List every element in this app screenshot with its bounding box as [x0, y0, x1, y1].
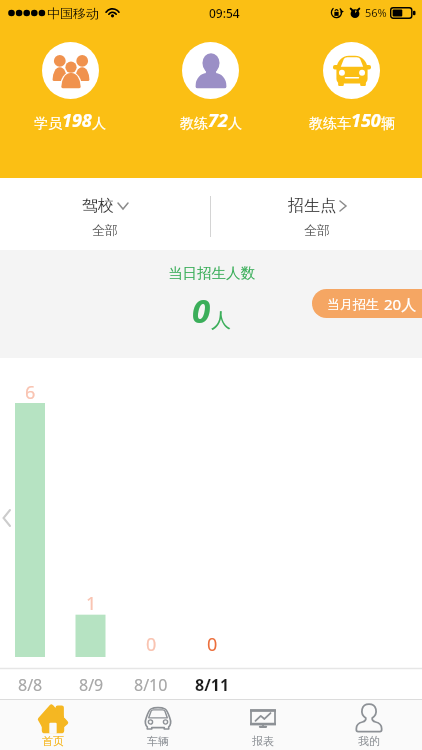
button[interactable]: Home	[0, 700, 105, 750]
staticText: 0	[146, 632, 157, 657]
button[interactable]: Reports	[210, 700, 316, 750]
staticText: 8/8	[18, 674, 43, 696]
staticText: 8/9	[79, 674, 104, 696]
button[interactable]: 当月招生	[312, 289, 422, 318]
staticText: 8/11	[195, 674, 230, 696]
staticText: 人	[92, 115, 106, 133]
staticText: 0	[207, 632, 218, 657]
staticText: 教练车	[309, 115, 351, 133]
staticText: 150	[351, 108, 381, 133]
staticText: 20人	[384, 294, 417, 314]
staticText: 8/10	[134, 674, 168, 696]
staticText: 09:54	[209, 5, 240, 21]
button[interactable]: 招生点	[211, 178, 422, 250]
staticText: 人	[211, 308, 231, 333]
button[interactable]: 教练车	[281, 42, 422, 133]
staticText: 招生点	[288, 196, 336, 216]
staticText: 全部	[304, 222, 330, 238]
button[interactable]: 学员	[0, 42, 140, 133]
staticText: 车辆	[147, 734, 169, 748]
staticText: 56%	[365, 5, 387, 20]
staticText: 0	[192, 288, 211, 333]
button[interactable]: Vehicles	[105, 700, 210, 750]
staticText: 198	[62, 108, 92, 133]
staticText: 人	[228, 115, 242, 133]
staticText: 当日招生人数	[168, 264, 255, 282]
staticText: 72	[208, 108, 228, 133]
staticText: 中国移动	[47, 5, 99, 21]
button[interactable]: 驾校	[0, 178, 210, 250]
staticText: 我的	[358, 734, 380, 748]
button[interactable]: Profile	[316, 700, 422, 750]
staticText: 1	[86, 591, 97, 616]
staticText: 全部	[92, 222, 118, 238]
staticText: 教练	[180, 115, 208, 133]
staticText: 辆	[381, 115, 395, 133]
staticText: 首页	[42, 734, 64, 748]
staticText: 当月招生	[327, 296, 379, 312]
staticText: 报表	[252, 734, 274, 748]
staticText: 驾校	[82, 196, 114, 216]
button[interactable]: 教练	[140, 42, 281, 133]
staticText: 学员	[34, 115, 62, 133]
staticText: 6	[25, 380, 36, 405]
